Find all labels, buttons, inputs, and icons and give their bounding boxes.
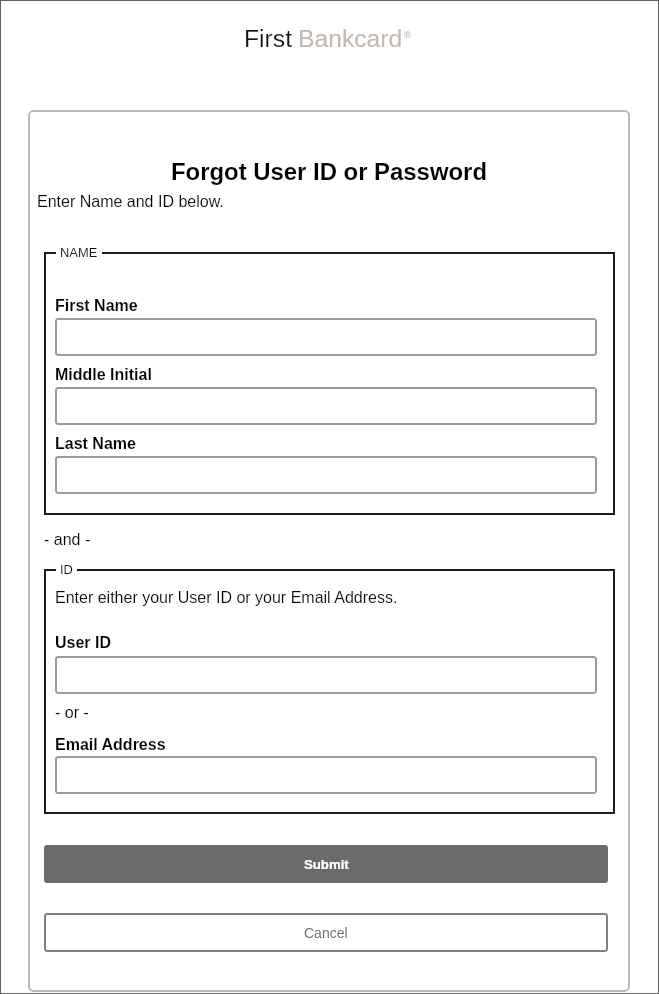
staticText: Submit (304, 857, 349, 872)
staticText: Bankcard (298, 25, 403, 53)
staticText: ® (404, 29, 411, 40)
button[interactable]: Email Address (55, 756, 597, 794)
staticText: NAME (60, 245, 98, 259)
staticText: User ID (55, 634, 112, 652)
staticText: - and - (44, 531, 91, 549)
button[interactable]: User ID (55, 656, 597, 694)
staticText: Last Name (55, 435, 136, 453)
staticText: First Name (55, 297, 138, 315)
button[interactable]: Submit (44, 845, 608, 883)
staticText: - or - (55, 704, 89, 722)
staticText: Middle Initial (55, 366, 152, 384)
staticText: Forgot User ID or Password (28, 158, 630, 185)
staticText: Enter either your User ID or your Email … (55, 589, 398, 607)
button[interactable]: Last Name (55, 456, 597, 494)
staticText: ID (60, 562, 73, 576)
staticText: Email Address (55, 736, 166, 754)
staticText: First (244, 25, 292, 53)
staticText: Cancel (304, 925, 348, 941)
staticText: Enter Name and ID below. (37, 193, 224, 211)
button[interactable]: Middle Initial (55, 387, 597, 425)
button[interactable]: First Name (55, 318, 597, 356)
button[interactable]: Cancel (44, 913, 608, 952)
